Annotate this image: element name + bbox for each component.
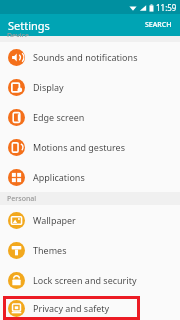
staticText: Privacy and safety	[33, 302, 110, 314]
staticText: Personal	[7, 194, 37, 204]
staticText: Lock screen and security	[33, 274, 137, 286]
staticText: Motions and gestures	[33, 141, 125, 153]
button[interactable]: Motions and gestures	[0, 132, 180, 162]
staticText: SEARCH	[145, 20, 172, 30]
button[interactable]: Lock screen and security	[0, 265, 180, 295]
staticText: Themes	[33, 244, 67, 256]
staticText: Edge screen	[33, 111, 85, 123]
button[interactable]: Themes	[0, 235, 180, 265]
staticText: Sounds and notifications	[33, 51, 138, 63]
staticText: Device	[7, 31, 30, 37]
button[interactable]: Edge screen	[0, 102, 180, 132]
staticText: Display	[33, 81, 64, 93]
staticText: 11:59	[156, 2, 177, 13]
staticText: Wallpaper	[33, 214, 76, 226]
button[interactable]: Privacy and safety	[3, 296, 140, 320]
button[interactable]: SEARCH	[137, 16, 180, 34]
button[interactable]: Applications	[0, 162, 180, 192]
staticText: Applications	[33, 171, 85, 183]
button[interactable]: Display	[0, 72, 180, 102]
staticText: Settings	[8, 18, 50, 33]
button[interactable]: Sounds and notifications	[0, 42, 180, 72]
button[interactable]: Wallpaper	[0, 205, 180, 235]
